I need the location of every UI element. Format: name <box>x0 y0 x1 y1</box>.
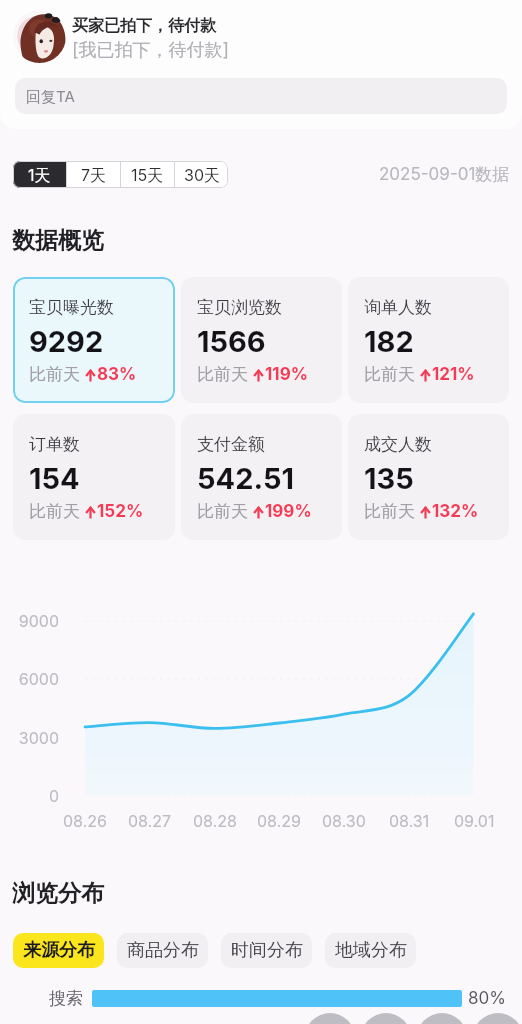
staticText: 135 <box>364 461 414 496</box>
button[interactable]: 回复TA <box>15 78 507 114</box>
staticText: 08.26 <box>63 811 107 830</box>
button[interactable]: 宝贝曝光数 <box>13 277 175 403</box>
staticText: 0 <box>48 786 59 805</box>
staticText: 来源分布 <box>23 939 95 962</box>
button[interactable]: 支付金额 <box>181 414 342 540</box>
staticText: 支付金额 <box>197 434 265 455</box>
staticText: 199% <box>265 501 312 522</box>
staticText: 121% <box>432 364 475 385</box>
button[interactable]: 30天 <box>175 161 228 188</box>
staticText: 154 <box>29 461 80 496</box>
staticText: 时间分布 <box>231 939 303 962</box>
button[interactable]: 订单数 <box>13 414 175 540</box>
button[interactable]: 询单人数 <box>348 277 509 403</box>
button[interactable]: 7天 <box>67 161 120 188</box>
staticText: 询单人数 <box>364 297 432 318</box>
staticText: 买家已拍下，待付款 <box>72 16 216 36</box>
staticText: 成交人数 <box>364 434 432 455</box>
staticText: 80% <box>468 988 506 1009</box>
staticText: 182 <box>364 324 414 359</box>
staticText: 09.01 <box>454 811 495 830</box>
staticText: [我已拍下，待付款] <box>72 39 230 62</box>
staticText: 1天 <box>28 165 51 185</box>
staticText: 比前天 <box>29 501 80 522</box>
staticText: 132% <box>432 501 479 522</box>
staticText: 比前天 <box>29 364 80 385</box>
button[interactable]: 成交人数 <box>348 414 509 540</box>
staticText: 1566 <box>197 324 266 359</box>
staticText: 宝贝浏览数 <box>197 297 282 318</box>
staticText: 比前天 <box>197 501 248 522</box>
staticText: 比前天 <box>197 364 248 385</box>
staticText: 83% <box>97 364 137 385</box>
staticText: 08.27 <box>128 811 172 830</box>
staticText: 2025-09-01数据 <box>379 164 510 186</box>
staticText: 08.28 <box>193 811 237 830</box>
staticText: 119% <box>265 364 308 385</box>
staticText: 08.29 <box>257 811 301 830</box>
button[interactable]: 来源分布 <box>13 933 104 968</box>
staticText: 08.30 <box>322 811 366 830</box>
staticText: 9292 <box>29 324 104 359</box>
staticText: 浏览分布 <box>12 879 104 908</box>
staticText: 542.51 <box>197 461 294 496</box>
staticText: 3000 <box>18 728 59 747</box>
staticText: 7天 <box>81 165 107 185</box>
staticText: 比前天 <box>364 364 415 385</box>
staticText: 152% <box>97 501 144 522</box>
button[interactable]: 商品分布 <box>117 933 208 968</box>
staticText: 地域分布 <box>335 939 407 962</box>
staticText: 30天 <box>184 165 220 185</box>
button[interactable]: 宝贝浏览数 <box>181 277 342 403</box>
staticText: 订单数 <box>29 434 80 455</box>
staticText: 搜索 <box>49 988 83 1009</box>
staticText: 08.31 <box>389 811 430 830</box>
button[interactable]: 15天 <box>121 161 174 188</box>
staticText: 商品分布 <box>127 939 199 962</box>
staticText: 比前天 <box>364 501 415 522</box>
staticText: 宝贝曝光数 <box>29 297 114 318</box>
staticText: 9000 <box>18 611 59 630</box>
button[interactable]: 地域分布 <box>325 933 416 968</box>
button[interactable]: 时间分布 <box>221 933 312 968</box>
staticText: 回复TA <box>26 87 75 106</box>
staticText: 15天 <box>131 165 164 185</box>
staticText: 数据概览 <box>12 226 104 255</box>
staticText: 6000 <box>18 669 59 688</box>
button[interactable]: 1天 <box>13 161 66 188</box>
